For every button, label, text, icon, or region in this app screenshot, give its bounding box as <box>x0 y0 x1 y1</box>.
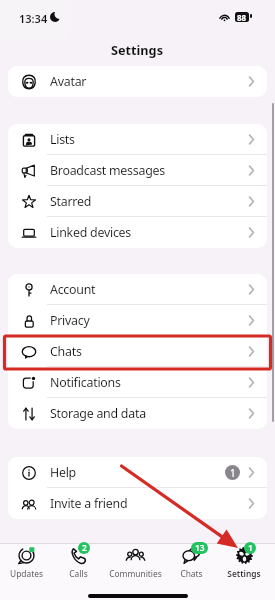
button[interactable]: Updates <box>0 544 54 584</box>
staticText: Lists <box>50 131 75 148</box>
staticText: 2 <box>82 542 87 554</box>
staticText: Broadcast messages <box>50 162 165 179</box>
other: Settings <box>236 547 253 564</box>
staticText: Help <box>50 464 76 481</box>
button[interactable]: Communities <box>107 544 163 584</box>
staticText: Avatar <box>50 73 87 90</box>
staticText: 13 <box>195 542 205 554</box>
other: Communities <box>127 547 144 564</box>
button[interactable]: Privacy <box>8 305 267 336</box>
button[interactable]: Chats <box>8 336 267 367</box>
staticText: 1 <box>248 542 253 554</box>
staticText: 88 <box>237 12 247 22</box>
button[interactable]: Help <box>8 457 267 488</box>
staticText: Calls <box>69 568 88 579</box>
button[interactable]: Settings <box>216 544 272 584</box>
button[interactable]: Storage and data <box>8 398 267 429</box>
staticText: Chats <box>50 343 82 360</box>
staticText: Updates <box>10 568 43 579</box>
other: Calls <box>70 547 87 564</box>
staticText: Settings <box>111 41 164 58</box>
staticText: Privacy <box>50 312 90 329</box>
staticText: Invite a friend <box>50 495 128 512</box>
staticText: Starred <box>50 193 92 210</box>
other: Updates <box>18 547 35 564</box>
staticText: Communities <box>109 568 162 579</box>
staticText: Notifications <box>50 374 121 391</box>
staticText: Storage and data <box>50 405 146 422</box>
button[interactable]: Calls <box>50 544 106 584</box>
button[interactable]: Linked devices <box>8 217 267 248</box>
button[interactable]: Broadcast messages <box>8 155 267 186</box>
button[interactable]: Invite a friend <box>8 488 267 519</box>
other: Chats <box>183 547 200 564</box>
button[interactable]: Chats <box>163 544 219 584</box>
button[interactable]: Starred <box>8 186 267 217</box>
staticText: 1 <box>230 466 236 480</box>
button[interactable]: Account <box>8 274 267 305</box>
staticText: Settings <box>227 568 261 579</box>
staticText: Account <box>50 281 96 298</box>
staticText: Linked devices <box>50 224 132 241</box>
button[interactable]: Avatar <box>8 66 267 97</box>
button[interactable]: Notifications <box>8 367 267 398</box>
staticText: 13:34 <box>19 11 48 26</box>
button[interactable]: Lists <box>8 124 267 155</box>
staticText: Chats <box>180 568 203 579</box>
